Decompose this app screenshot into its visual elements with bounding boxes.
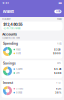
staticText: Left: [16, 72, 20, 74]
staticText: Updated just now: [2, 37, 20, 39]
button[interactable]: Spending: [1, 41, 63, 59]
staticText: $320: [54, 48, 61, 51]
staticText: $2.8k: [54, 72, 61, 74]
staticText: +2.4% this week: [3, 27, 20, 30]
staticText: Today: [57, 18, 62, 21]
staticText: Bonds: [16, 91, 22, 94]
staticText: Stocks: [16, 87, 23, 90]
staticText: Add: [56, 10, 60, 13]
staticText: Saved: [16, 68, 22, 71]
staticText: Spending: [3, 42, 18, 45]
staticText: Balance: [2, 18, 10, 21]
staticText: 9:41: [2, 1, 8, 5]
staticText: Food: [16, 48, 20, 51]
button[interactable]: Savings: [1, 60, 63, 78]
staticText: 60%: [57, 62, 61, 65]
staticText: Savings: [3, 61, 16, 65]
staticText: YTD: [56, 81, 61, 84]
staticText: ▮▮▮: [58, 2, 61, 4]
staticText: 62%: [56, 87, 61, 90]
staticText: Wallet: [2, 9, 13, 14]
staticText: Invest: [3, 81, 13, 85]
staticText: $4.2k: [54, 68, 61, 71]
staticText: $12,480.55: [3, 22, 22, 27]
staticText: Aug: [57, 42, 61, 45]
staticText: 38%: [55, 91, 61, 94]
staticText: Rent: [16, 52, 21, 55]
staticText: Accounts: [2, 32, 17, 36]
button[interactable]: Add: [54, 10, 61, 13]
staticText: $900: [53, 52, 61, 55]
button[interactable]: Invest: [1, 80, 63, 98]
